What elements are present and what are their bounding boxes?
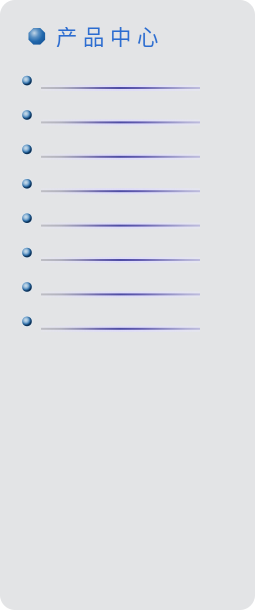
- button[interactable]: List item: [0, 0, 255, 610]
- button[interactable]: List item: [0, 0, 255, 610]
- button[interactable]: List item: [0, 0, 255, 610]
- staticText: 产品中心: [56, 20, 158, 51]
- button[interactable]: List item: [0, 0, 255, 610]
- button[interactable]: List item: [0, 0, 255, 610]
- button[interactable]: List item: [0, 0, 255, 610]
- button[interactable]: List item: [0, 0, 255, 610]
- button[interactable]: List item: [0, 0, 255, 610]
